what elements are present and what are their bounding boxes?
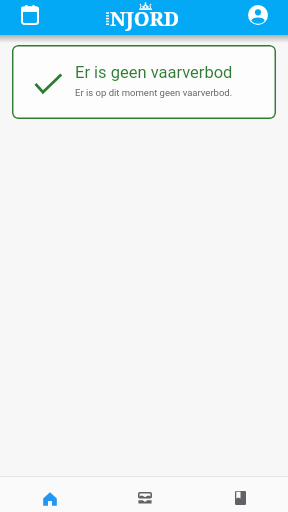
staticText: NJORD [110,5,179,32]
button[interactable]: Home [0,477,96,512]
staticText: Er is op dit moment geen vaarverbod. [75,87,233,98]
button[interactable]: Book [192,477,288,512]
button[interactable]: Calendar [17,2,43,28]
staticText: Er is geen vaarverbod [75,63,233,82]
button[interactable]: Account [245,2,271,28]
button[interactable]: Inbox [96,477,192,512]
button[interactable]: Er is geen vaarverbod [12,45,276,119]
